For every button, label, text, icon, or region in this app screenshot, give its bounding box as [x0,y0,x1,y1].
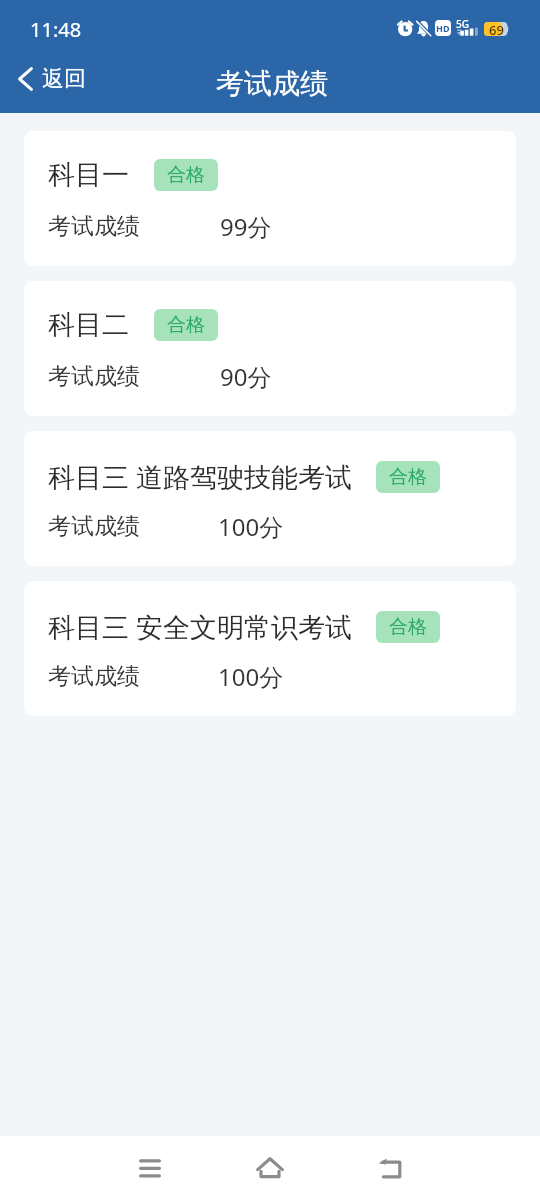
staticText: 合格 [389,465,427,489]
staticText: 科目三 安全文明常识考试 [48,608,353,645]
staticText: 返回 [42,65,86,93]
staticText: 科目二 [48,308,129,342]
button[interactable]: 科目二 [24,281,516,416]
staticText: 99分 [220,210,272,243]
staticText: 合格 [389,615,427,639]
staticText: 合格 [167,163,205,187]
button[interactable]: Recents [122,1140,178,1196]
staticText: 100分 [218,510,284,543]
button[interactable]: 科目三 道路驾驶技能考试 [24,431,516,566]
button[interactable]: 科目一 [24,131,516,266]
staticText: 90分 [220,360,272,393]
staticText: 69 [489,21,504,35]
staticText: 考试成绩 [48,212,140,241]
staticText: 合格 [167,313,205,337]
staticText: 考试成绩 [48,662,140,691]
staticText: 考试成绩 [216,66,328,101]
staticText: 考试成绩 [48,512,140,541]
button[interactable]: 科目三 安全文明常识考试 [24,581,516,716]
staticText: 11:48 [30,16,82,43]
staticText: 科目三 道路驾驶技能考试 [48,458,353,495]
staticText: 科目一 [48,158,129,192]
staticText: 100分 [218,660,284,693]
staticText: 考试成绩 [48,362,140,391]
button[interactable]: Home [242,1140,298,1196]
button[interactable]: 返回 [8,57,100,103]
staticText: HD [436,22,450,34]
button[interactable]: Back [362,1140,418,1196]
staticText: 5G [456,17,469,31]
